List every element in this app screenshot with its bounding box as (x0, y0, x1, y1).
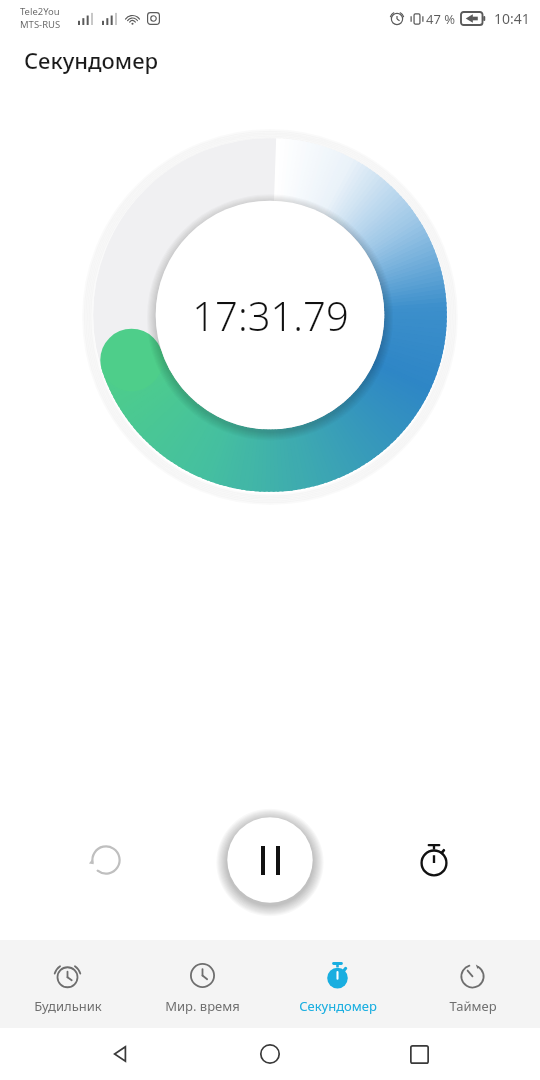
staticText: 47 % (426, 10, 456, 28)
button[interactable]: Reset (80, 834, 132, 886)
button[interactable]: Будильник (0, 953, 135, 1015)
button[interactable]: Back (93, 1028, 149, 1080)
button[interactable]: Мир. время (135, 953, 270, 1015)
staticText: 17:31.79 (192, 288, 349, 342)
staticText: Таймер (449, 997, 497, 1015)
staticText: Будильник (34, 997, 102, 1015)
button[interactable]: Home (242, 1028, 298, 1080)
button[interactable]: Таймер (405, 953, 540, 1015)
button[interactable]: Pause (227, 817, 313, 903)
button[interactable]: Lap (408, 834, 460, 886)
staticText: Секундомер (299, 997, 377, 1015)
staticText: MTS-RUS (20, 18, 61, 31)
staticText: 10:41 (494, 9, 530, 28)
button[interactable]: Секундомер (270, 953, 405, 1015)
staticText: Tele2You (20, 5, 60, 18)
staticText: Секундомер (24, 45, 159, 75)
button[interactable]: Recents (391, 1028, 447, 1080)
staticText: Мир. время (165, 997, 240, 1015)
